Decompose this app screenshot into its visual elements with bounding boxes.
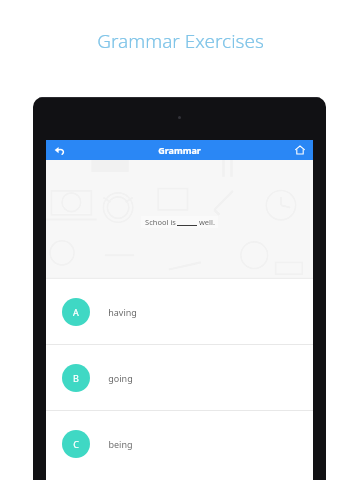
staticText: B [73,372,79,384]
staticText: well. [197,217,215,227]
staticText: having [108,306,137,318]
button[interactable]: Home [287,140,313,160]
staticText: A [73,306,79,318]
button[interactable]: Back [46,140,72,160]
staticText: going [108,372,133,384]
button[interactable]: B [46,345,313,410]
staticText: School is [144,217,177,227]
staticText: C [73,438,79,450]
button[interactable]: C [46,411,313,476]
staticText: Grammar Exercises [97,28,264,54]
staticText: Grammar [158,144,201,156]
staticText: being [108,438,133,450]
button[interactable]: A [46,279,313,344]
